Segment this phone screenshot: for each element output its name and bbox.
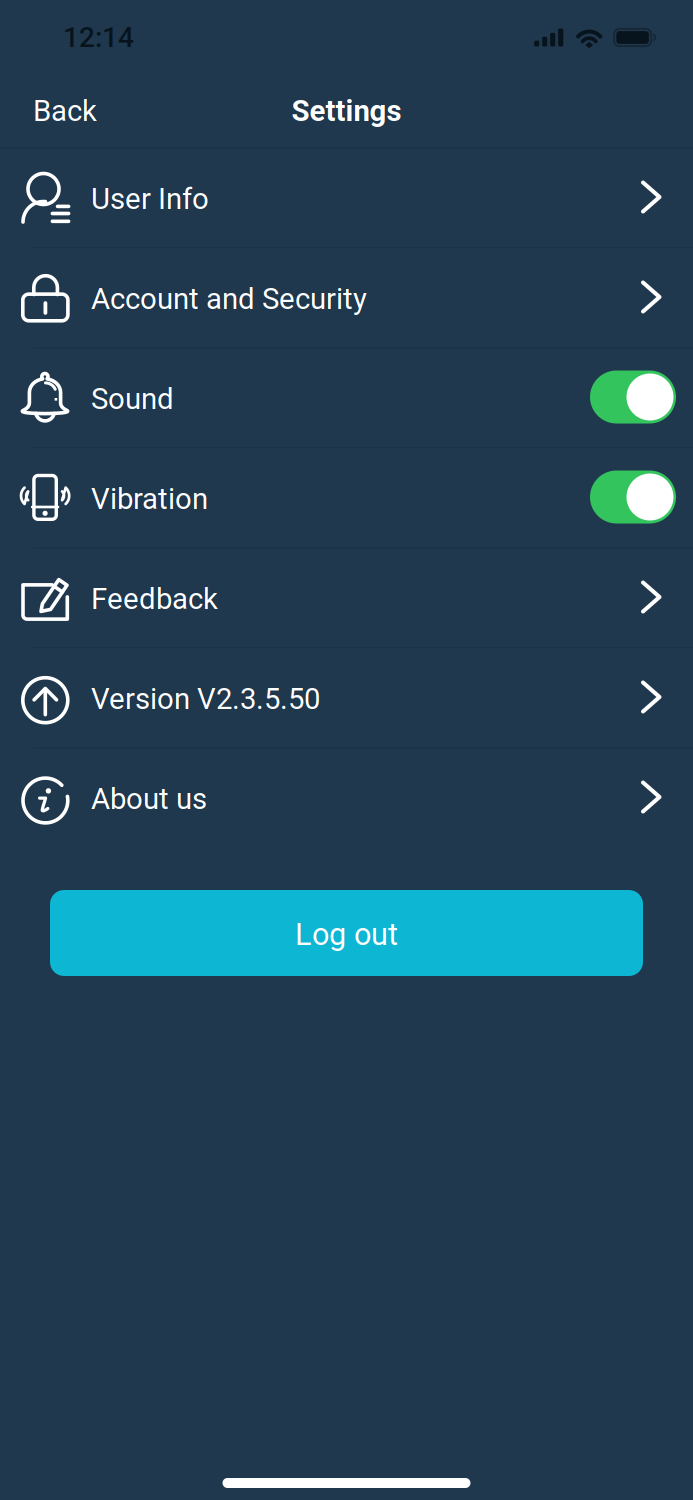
staticText: 12:14 — [63, 21, 134, 54]
button[interactable]: Account and Security — [0, 247, 693, 347]
button[interactable]: User Info — [0, 147, 693, 247]
button[interactable]: About us — [0, 747, 693, 847]
staticText: Account and Security — [91, 282, 367, 316]
staticText: Vibration — [91, 482, 208, 516]
button[interactable]: Feedback — [0, 547, 693, 647]
staticText: About us — [91, 782, 207, 816]
button[interactable]: Back — [0, 82, 115, 140]
staticText: Sound — [91, 382, 174, 416]
button[interactable]: Log out — [50, 890, 643, 976]
staticText: User Info — [91, 182, 209, 216]
button[interactable]: Sound — [0, 347, 693, 447]
staticText: Back — [33, 94, 97, 128]
staticText: Feedback — [91, 582, 218, 616]
staticText: Settings — [291, 94, 401, 128]
staticText: Version V2.3.5.50 — [91, 682, 320, 716]
staticText: Log out — [295, 916, 398, 952]
button[interactable]: Vibration — [0, 447, 693, 547]
button[interactable]: Version V2.3.5.50 — [0, 647, 693, 747]
